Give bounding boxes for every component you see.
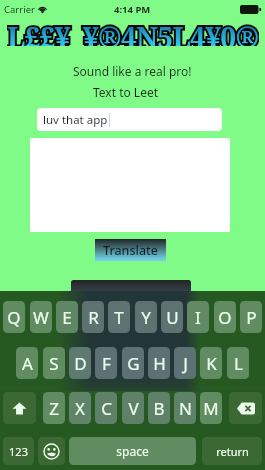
button[interactable]: S	[43, 347, 65, 379]
staticText: O	[218, 306, 232, 329]
button[interactable]: space	[69, 437, 196, 465]
button[interactable]: 123	[3, 437, 34, 465]
staticText: Translate	[103, 242, 158, 259]
button[interactable]: E	[56, 301, 78, 333]
button[interactable]: G	[122, 347, 144, 379]
button[interactable]: Q	[3, 301, 25, 333]
staticText: A	[22, 352, 33, 375]
staticText: Sound like a real pro!	[73, 63, 192, 79]
button[interactable]: A	[16, 347, 38, 379]
button[interactable]: P	[240, 301, 262, 333]
staticText: return	[216, 444, 249, 459]
staticText: R	[88, 306, 99, 329]
button[interactable]: Y	[135, 301, 157, 333]
staticText: L££¥ ¥®4N5L4¥0®	[7, 18, 259, 46]
staticText: H	[153, 352, 166, 375]
staticText: D	[74, 352, 87, 375]
staticText: I	[195, 306, 201, 329]
staticText: W	[33, 306, 49, 329]
staticText: G	[127, 352, 140, 375]
staticText: P	[246, 306, 257, 329]
button[interactable]: Z	[43, 392, 65, 424]
staticText: U	[166, 306, 179, 329]
staticText: N	[179, 397, 192, 420]
staticText: F	[102, 352, 111, 375]
button[interactable]: V	[122, 392, 144, 424]
staticText: Text to Leet	[93, 84, 159, 100]
staticText: T	[114, 306, 124, 329]
staticText: K	[206, 352, 217, 375]
button[interactable]: Emoji keyboard	[38, 437, 65, 465]
staticText: space	[116, 443, 149, 459]
staticText: 123	[9, 444, 28, 459]
staticText: X	[75, 397, 85, 420]
staticText: Q	[7, 306, 21, 329]
button[interactable]: F	[95, 347, 117, 379]
staticText: Y	[141, 306, 151, 329]
staticText: 4:14 PM	[114, 3, 151, 16]
button[interactable]: N	[174, 392, 196, 424]
button[interactable]: W	[30, 301, 52, 333]
button[interactable]: R	[82, 301, 104, 333]
staticText: M	[203, 397, 219, 420]
staticText: luv that app	[43, 112, 108, 128]
button[interactable]: X	[69, 392, 91, 424]
button[interactable]: L	[227, 347, 249, 379]
staticText: Carrier	[4, 3, 35, 16]
button[interactable]: J	[174, 347, 196, 379]
button[interactable]: C	[95, 392, 117, 424]
staticText: E	[62, 306, 72, 329]
button[interactable]: D	[69, 347, 91, 379]
button[interactable]: I	[187, 301, 209, 333]
button[interactable]: H	[148, 347, 170, 379]
button[interactable]: luv that app	[37, 108, 222, 131]
button[interactable]: Shift	[3, 392, 36, 424]
staticText: B	[153, 397, 165, 420]
staticText: S	[49, 352, 59, 375]
button[interactable]: B	[148, 392, 170, 424]
button[interactable]: Translate	[95, 239, 166, 261]
staticText: C	[101, 397, 112, 420]
staticText: Z	[49, 397, 59, 420]
button[interactable]: K	[200, 347, 222, 379]
button[interactable]: T	[108, 301, 130, 333]
button[interactable]: Backspace	[229, 392, 262, 424]
button[interactable]: return	[202, 437, 262, 465]
button[interactable]: O	[214, 301, 236, 333]
button[interactable]: U	[161, 301, 183, 333]
staticText: J	[183, 352, 188, 375]
staticText: V	[128, 397, 139, 420]
button[interactable]: M	[200, 392, 222, 424]
staticText: L	[234, 352, 243, 375]
staticText: L££¥ ¥®4N5L4¥0®	[7, 18, 259, 46]
